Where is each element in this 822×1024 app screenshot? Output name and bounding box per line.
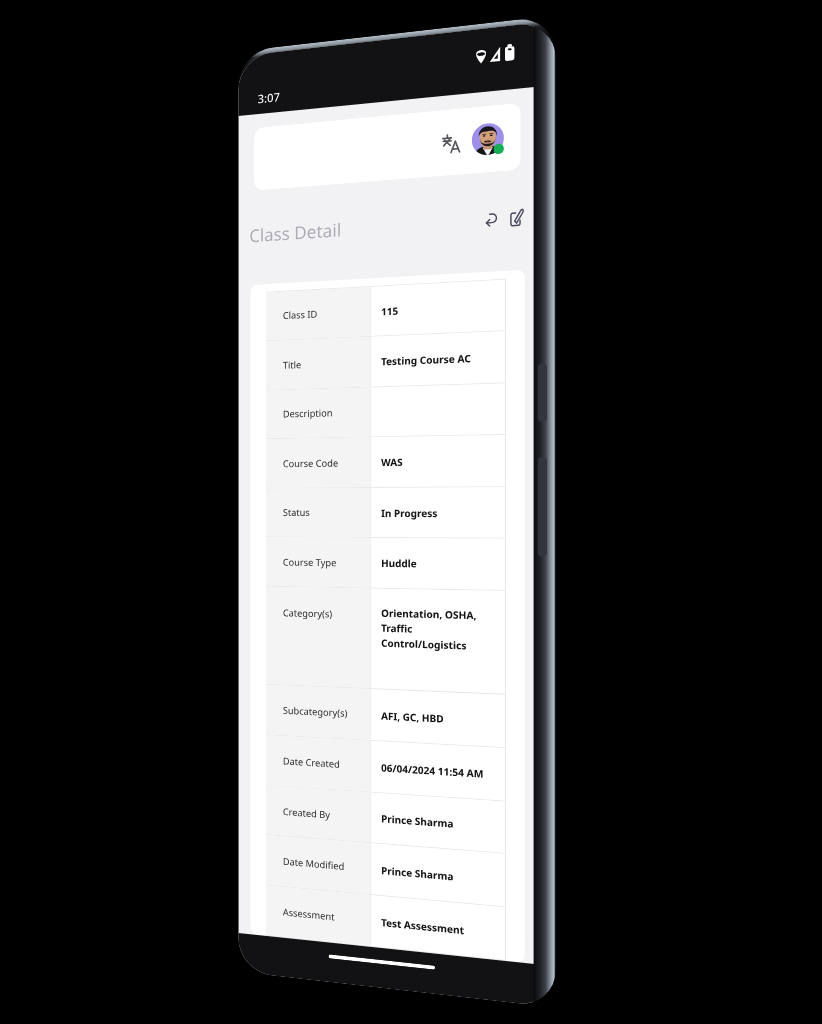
staticText: Course Type (283, 556, 337, 569)
staticText: Description (283, 406, 333, 420)
staticText: Assessment (283, 906, 335, 923)
staticText: Prince Sharma (381, 863, 454, 884)
staticText: Status (283, 506, 310, 519)
staticText: Date Modified (283, 855, 345, 873)
staticText: Title (283, 358, 302, 372)
button[interactable]: Profile (472, 122, 504, 156)
button[interactable]: Category(s) (266, 587, 506, 695)
staticText: 115 (381, 304, 399, 318)
button[interactable]: Date Modified (266, 835, 506, 908)
staticText: Orientation, OSHA, Traffic Control/Logis… (381, 606, 477, 653)
button[interactable]: Edit (506, 206, 527, 228)
button[interactable]: Course Code (266, 435, 506, 489)
staticText: Huddle (381, 556, 417, 570)
staticText: Subcategory(s) (283, 704, 348, 720)
staticText: Class Detail (249, 217, 342, 248)
staticText: AFI, GC, HBD (381, 708, 444, 726)
button[interactable]: Title (266, 331, 506, 391)
button[interactable]: Description (266, 384, 506, 439)
staticText: Category(s) (283, 606, 332, 620)
staticText: Class ID (283, 308, 318, 322)
staticText: 06/04/2024 11:54 AM (381, 760, 484, 781)
button[interactable]: Translate (440, 131, 462, 155)
staticText: Created By (283, 805, 330, 821)
button[interactable]: Back (481, 208, 502, 230)
staticText: Course Code (283, 457, 338, 470)
button[interactable]: Assessment (266, 885, 506, 961)
button[interactable]: Status (266, 487, 506, 539)
button[interactable]: Class ID (266, 280, 506, 341)
button[interactable]: Created By (266, 786, 506, 854)
staticText: WAS (381, 455, 403, 469)
staticText: Testing Course AC (381, 351, 472, 368)
staticText: In Progress (381, 506, 438, 520)
button[interactable]: Subcategory(s) (266, 685, 506, 748)
staticText: Date Created (283, 755, 340, 771)
button[interactable]: Translate (254, 103, 521, 191)
button[interactable]: Course Type (266, 537, 506, 591)
button[interactable]: Date Created (266, 735, 506, 802)
staticText: Prince Sharma (381, 811, 454, 831)
staticText: Test Assessment (381, 915, 465, 937)
staticText: 3:07 (258, 88, 280, 106)
